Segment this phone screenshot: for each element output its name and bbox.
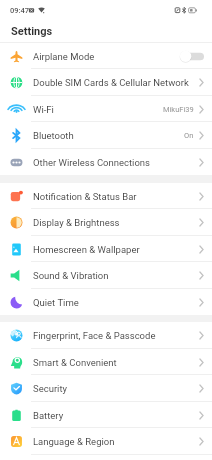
staticText: MikuFi39 — [163, 105, 194, 114]
button[interactable]: Wi-Fi — [0, 96, 212, 122]
button[interactable]: Battery — [0, 402, 212, 428]
staticText: Bluetooth — [33, 130, 74, 141]
button[interactable]: Language & Region — [0, 428, 212, 455]
button[interactable]: Airplane Mode — [0, 43, 212, 69]
staticText: Quiet Time — [33, 297, 79, 308]
button[interactable]: Quiet Time — [0, 289, 212, 315]
button[interactable]: Security — [0, 375, 212, 402]
staticText: Fingerprint, Face & Passcode — [33, 330, 156, 341]
staticText: Battery — [33, 410, 64, 421]
staticText: Airplane Mode — [33, 51, 95, 62]
staticText: Display & Brightness — [33, 217, 120, 228]
staticText: Notification & Status Bar — [33, 191, 137, 202]
staticText: Double SIM Cards & Cellular Network — [33, 77, 189, 88]
staticText: Other Wireless Connections — [33, 157, 150, 168]
staticText: Homescreen & Wallpaper — [33, 244, 140, 255]
staticText: Language & Region — [33, 436, 115, 447]
button[interactable]: Other Wireless Connections — [0, 149, 212, 175]
button[interactable]: Notification & Status Bar — [0, 183, 212, 209]
staticText: Sound & Vibration — [33, 270, 109, 281]
button[interactable]: Display & Brightness — [0, 209, 212, 236]
staticText: 09:47 — [10, 6, 30, 15]
staticText: On — [184, 131, 194, 140]
staticText: Smart & Convenient — [33, 357, 117, 368]
button[interactable]: Double SIM Cards & Cellular Network — [0, 69, 212, 96]
button[interactable]: Homescreen & Wallpaper — [0, 236, 212, 262]
staticText: Settings — [11, 25, 53, 38]
button[interactable]: Smart & Convenient — [0, 349, 212, 375]
button[interactable]: Bluetooth — [0, 122, 212, 149]
staticText: Security — [33, 383, 68, 394]
button[interactable]: Fingerprint, Face & Passcode — [0, 322, 212, 349]
staticText: Wi-Fi — [33, 104, 54, 115]
button[interactable]: Sound & Vibration — [0, 262, 212, 289]
